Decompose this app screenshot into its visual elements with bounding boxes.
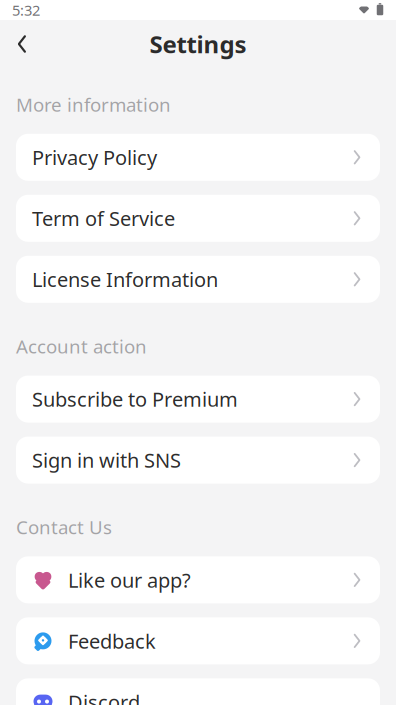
staticText: Settings [149,28,246,60]
staticText: Privacy Policy [32,144,157,171]
staticText: Account action [16,334,147,359]
staticText: More information [16,92,171,117]
staticText: Sign in with SNS [32,447,181,473]
button[interactable]: License Information [16,256,380,303]
button[interactable]: Like our app? [16,556,380,603]
staticText: Feedback [68,628,156,654]
button[interactable]: Privacy Policy [16,134,380,181]
button[interactable]: Term of Service [16,195,380,242]
button[interactable]: Sign in with SNS [16,437,380,484]
button[interactable]: Subscribe to Premium [16,376,380,423]
button[interactable]: Back [0,23,40,65]
staticText: 5:32 [12,0,40,20]
button[interactable]: Discord [16,678,380,705]
staticText: Contact Us [16,515,112,539]
staticText: Discord [68,689,140,705]
staticText: Like our app? [68,567,191,593]
staticText: Term of Service [32,205,175,232]
staticText: Subscribe to Premium [32,386,238,412]
staticText: License Information [32,266,218,293]
button[interactable]: Feedback [16,617,380,664]
